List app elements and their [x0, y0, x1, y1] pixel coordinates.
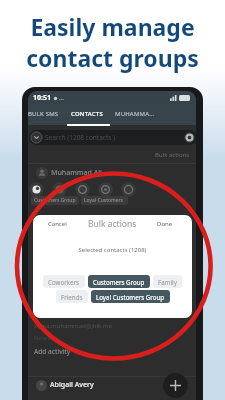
- staticText: Selected contacts (1208): [33, 246, 192, 254]
- button[interactable]: Customers Group: [88, 275, 150, 288]
- button[interactable]: MUHAMMA...: [109, 105, 161, 123]
- staticText: Abigail Avery: [50, 380, 94, 390]
- staticText: BULK SMS: [28, 110, 59, 118]
- staticText: Add activity: [34, 347, 71, 356]
- button[interactable]: Loyal Customers Group: [91, 290, 170, 303]
- staticText: zuma.muhammad@jhik.me: [34, 322, 112, 330]
- button[interactable]: Email: [75, 182, 90, 197]
- staticText: Friends: [61, 293, 83, 301]
- button[interactable]: Coworkers: [43, 275, 85, 288]
- staticText: Easily manage: [30, 11, 195, 42]
- button[interactable]: Message: [52, 182, 67, 197]
- staticText: Done: [157, 220, 173, 228]
- staticText: Customers Group: [93, 278, 145, 286]
- staticText: Muhammad Ali: [51, 168, 102, 178]
- button[interactable]: Call: [29, 182, 44, 197]
- button[interactable]: BULK SMS: [28, 105, 69, 123]
- button[interactable]: Search (1208 contacts ): [29, 130, 196, 145]
- staticText: Family: [158, 278, 177, 286]
- button[interactable]: WhatsApp: [121, 182, 136, 197]
- staticText: 10:51: [33, 93, 51, 103]
- staticText: Search (1208 contacts ): [45, 133, 116, 142]
- button[interactable]: Add activity: [28, 344, 196, 358]
- button[interactable]: CONTACTS: [61, 105, 113, 123]
- button[interactable]: Settings: [184, 132, 195, 143]
- staticText: Customers Group: [34, 197, 76, 204]
- button[interactable]: Customers Group: [31, 196, 79, 205]
- staticText: ...: [59, 94, 64, 102]
- staticText: Loyal Customers Group: [96, 293, 165, 301]
- button[interactable]: Done: [154, 218, 176, 230]
- staticText: MUHAMMA...: [115, 110, 155, 118]
- button[interactable]: Cancel: [45, 218, 70, 230]
- button[interactable]: Loyal Customers: [81, 196, 128, 205]
- staticText: Cancel: [48, 220, 67, 228]
- button[interactable]: Abigail Avery: [28, 377, 196, 393]
- button[interactable]: Friends: [56, 290, 88, 303]
- button[interactable]: Location: [98, 182, 113, 197]
- staticText: Loyal Customers: [84, 197, 125, 204]
- staticText: Bulk actions: [155, 151, 190, 159]
- staticText: Coworkers: [48, 278, 80, 286]
- staticText: contact groups: [26, 42, 199, 73]
- button[interactable]: Muhammad Ali: [28, 165, 196, 181]
- staticText: Bulk actions: [88, 218, 137, 230]
- staticText: CONTACTS: [71, 110, 103, 118]
- button[interactable]: Add contact: [163, 373, 188, 398]
- button[interactable]: Family: [153, 275, 182, 288]
- staticText: Notes: [34, 334, 51, 342]
